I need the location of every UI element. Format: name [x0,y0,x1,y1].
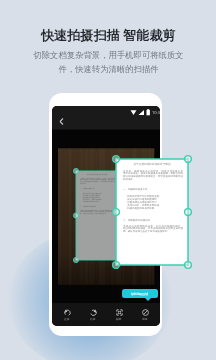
staticText: 关于文档扫描件处理的若干建议 [76,173,118,175]
staticText: · 将纸张平铺于对比明显的桌面 · 保证光线均匀避免明显阴影 · 尽量使镜头与纸… [126,194,160,209]
staticText: 切除文档复杂背景，用手机即可将纸质文 件，快速转为清晰的扫描件 [33,50,184,75]
button[interactable]: 关于文档扫描件处理的若干建议 [76,171,118,260]
button[interactable]: 左旋 [56,303,78,326]
button[interactable]: Back [55,115,68,128]
staticText: 滤镜 [142,317,148,320]
staticText: · 将纸张平铺于对比明显的桌面 · 保证光线均匀避免明显阴影 · 尽量使镜头与纸… [82,192,102,202]
button[interactable]: 滤镜 [134,303,156,326]
button[interactable]: 关于文档扫描件处理的若干建议 [116,159,188,265]
staticText: 系统会自动检测纸张边界，并生成可拖拽的选区。若识别结果存在偏差，可手动拖动四角的… [80,209,115,215]
staticText: 右旋 [90,317,96,320]
staticText: 一、拍摄前的准备工作 [123,188,148,191]
staticText: 裁剪 [116,317,122,320]
staticText: 近年来，随着移动办公的普及，纸质文件的电子化需求日益增长。通过手机摄像头采集图像… [80,177,115,185]
staticText: 二、智能裁剪与边缘识别 [80,206,96,208]
staticText: 近年来，随着移动办公的普及，纸质文件的电子化需求日益增长。通过手机摄像头采集图像… [123,169,183,181]
staticText: 智能选取区域 [131,292,149,296]
staticText: 关于文档扫描件处理的若干建议 [116,162,188,165]
staticText: 系统会自动检测纸张边界，并生成可拖拽的选区。若识别结果存在偏差，可手动拖动四角的… [123,224,183,233]
staticText: 一、拍摄前的准备工作 [80,188,95,190]
staticText: 左旋 [64,317,70,320]
staticText: 二、智能裁剪与边缘识别 [123,219,150,222]
button[interactable]: 右旋 [82,303,104,326]
button[interactable]: 智能选取区域 [122,289,158,298]
button[interactable]: 裁剪 [108,303,130,326]
staticText: 10:30 [152,110,160,115]
staticText: 快速拍摄扫描 智能裁剪 [41,26,176,44]
